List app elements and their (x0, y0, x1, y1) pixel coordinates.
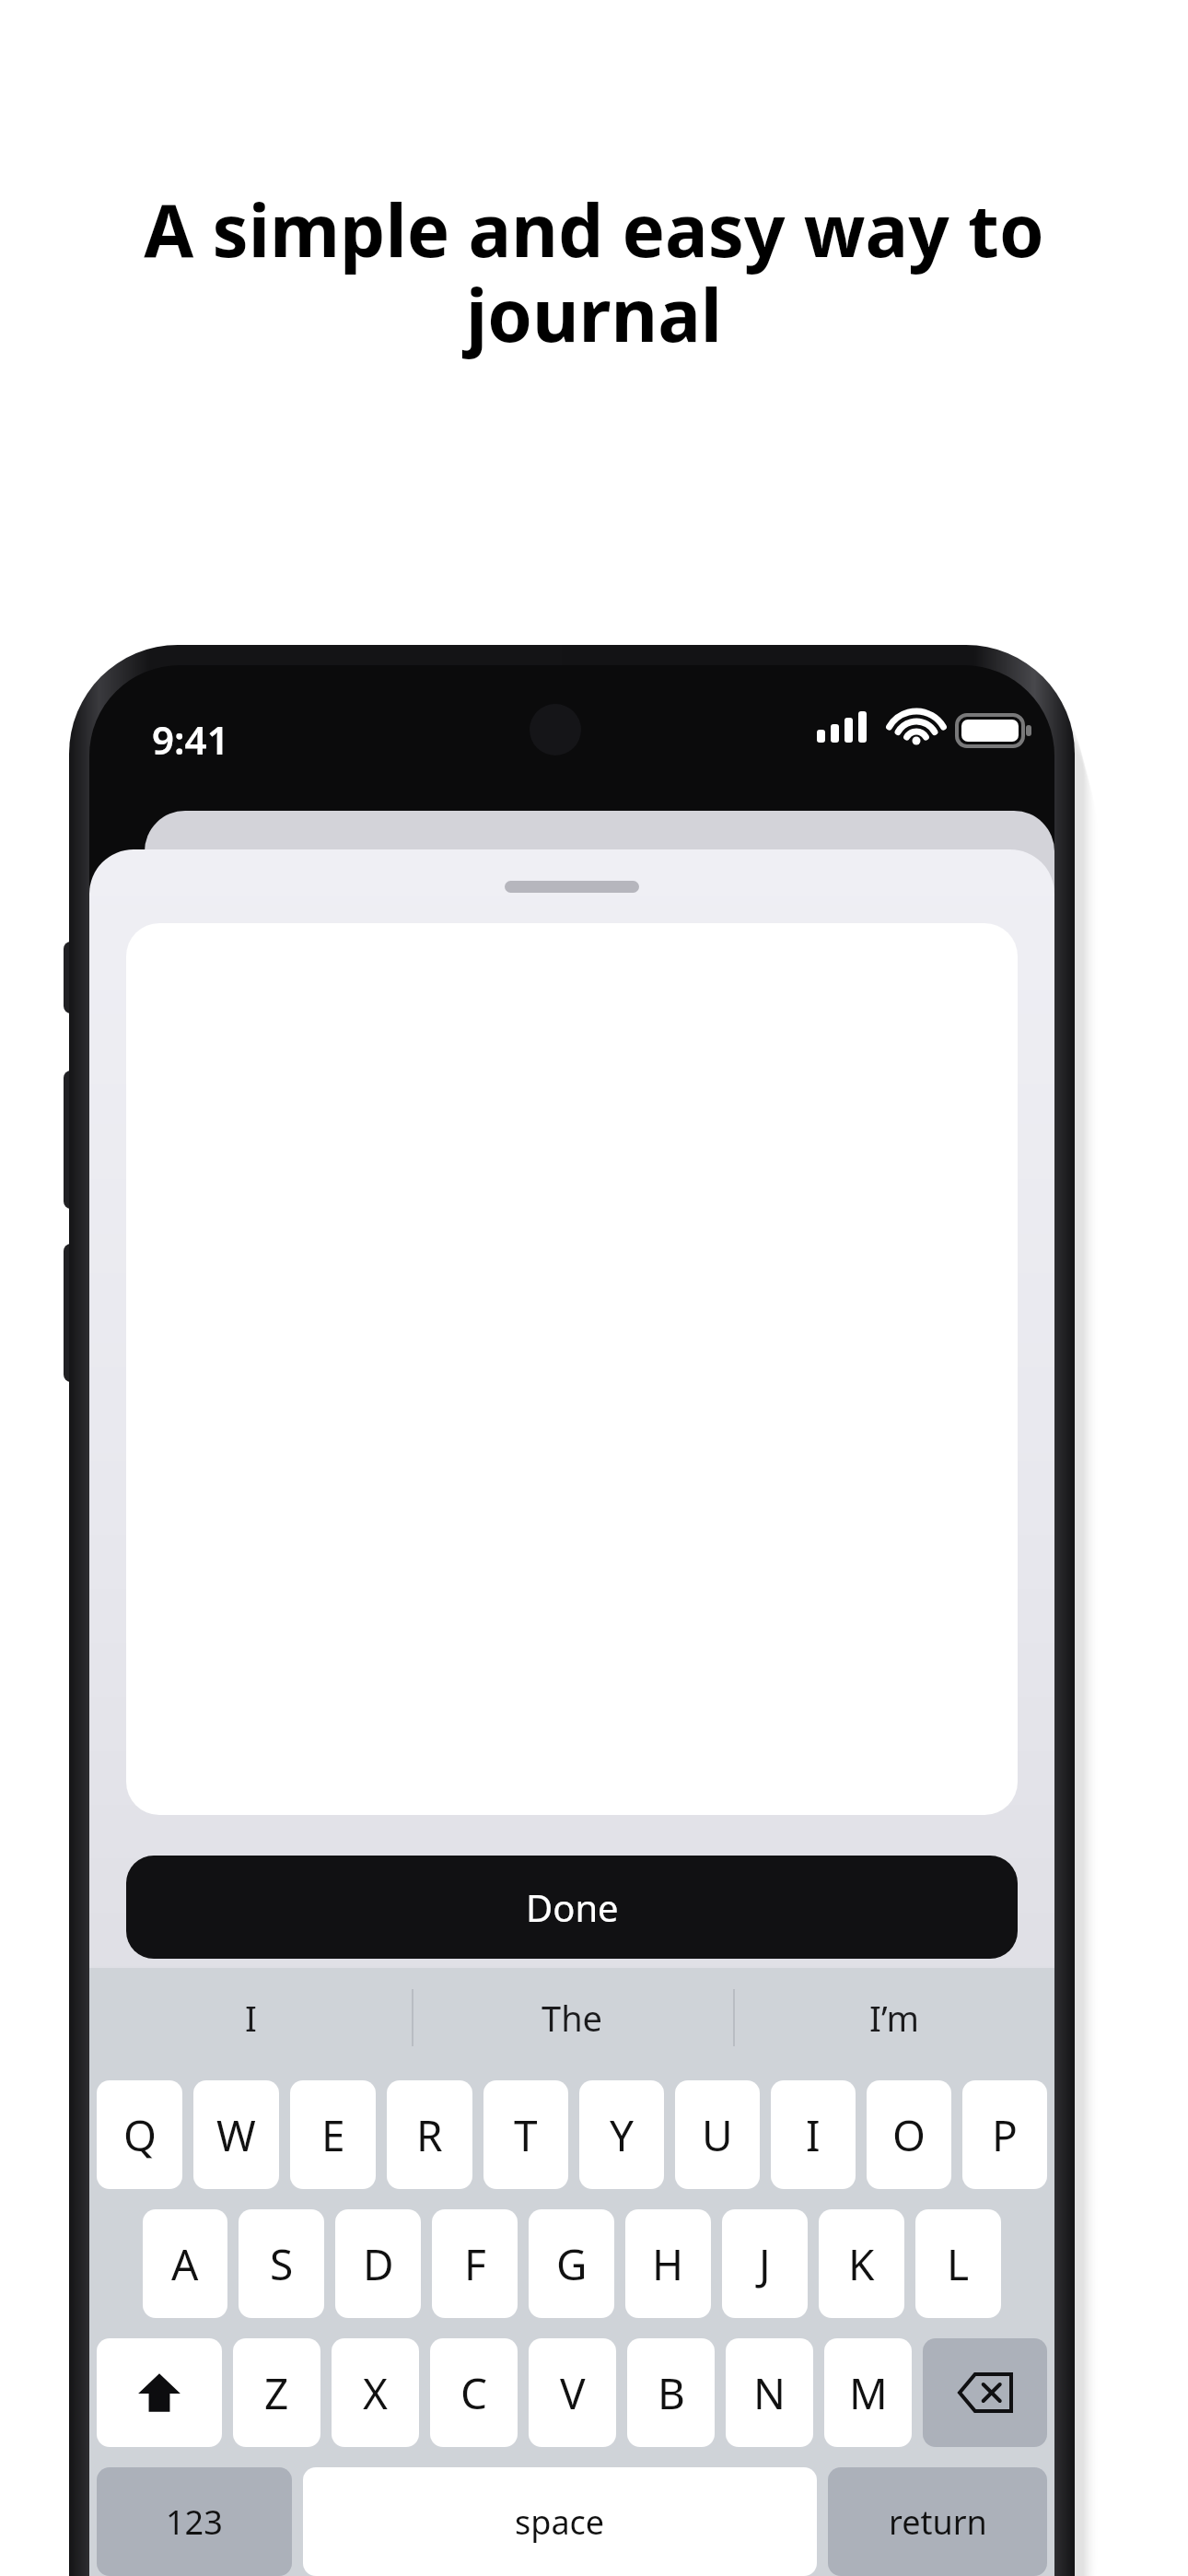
button[interactable]: L (915, 2209, 1001, 2318)
button[interactable]: W (193, 2080, 279, 2189)
staticText: Q (123, 2106, 157, 2164)
button[interactable]: 123 (97, 2467, 292, 2576)
button[interactable]: R (387, 2080, 472, 2189)
button[interactable]: Backspace (923, 2338, 1047, 2447)
staticText: D (363, 2235, 394, 2293)
button[interactable]: T (483, 2080, 568, 2189)
button[interactable]: F (432, 2209, 518, 2318)
staticText: Done (526, 1882, 619, 1932)
staticText: L (947, 2235, 970, 2293)
staticText: T (514, 2106, 538, 2164)
button[interactable]: I (89, 1968, 412, 2067)
button[interactable]: J (722, 2209, 808, 2318)
button[interactable]: I’m (733, 1968, 1054, 2067)
staticText: G (556, 2235, 588, 2293)
button[interactable]: The (412, 1968, 733, 2067)
staticText: F (464, 2235, 486, 2293)
button[interactable]: U (675, 2080, 760, 2189)
staticText: C (460, 2364, 488, 2422)
button[interactable]: G (529, 2209, 614, 2318)
staticText: K (848, 2235, 875, 2293)
staticText: O (892, 2106, 926, 2164)
button[interactable]: D (335, 2209, 421, 2318)
button[interactable]: N (726, 2338, 813, 2447)
button[interactable]: K (819, 2209, 904, 2318)
button[interactable]: S (239, 2209, 324, 2318)
staticText: Z (264, 2364, 289, 2422)
staticText: M (849, 2364, 888, 2422)
button[interactable]: X (332, 2338, 419, 2447)
button[interactable]: M (824, 2338, 912, 2447)
button[interactable]: C (430, 2338, 518, 2447)
button[interactable]: P (962, 2080, 1047, 2189)
staticText: return (889, 2500, 987, 2545)
button[interactable]: return (828, 2467, 1047, 2576)
staticText: space (515, 2500, 605, 2545)
button[interactable]: I (771, 2080, 856, 2189)
staticText: V (560, 2364, 586, 2422)
staticText: I’m (869, 1994, 919, 2042)
staticText: I (806, 2106, 821, 2164)
staticText: S (270, 2235, 294, 2293)
staticText: J (759, 2235, 771, 2293)
staticText: 123 (166, 2500, 223, 2545)
button[interactable]: V (529, 2338, 616, 2447)
staticText: N (753, 2364, 786, 2422)
button[interactable]: space (303, 2467, 817, 2576)
staticText: P (992, 2106, 1018, 2164)
staticText: 9:41 (152, 713, 229, 766)
staticText: The (542, 1994, 603, 2042)
staticText: A simple and easy way to journal (64, 181, 1124, 363)
staticText: R (416, 2106, 443, 2164)
staticText: Y (610, 2106, 635, 2164)
button[interactable]: O (867, 2080, 951, 2189)
button[interactable]: A (143, 2209, 227, 2318)
staticText: X (363, 2364, 388, 2422)
staticText: H (652, 2235, 684, 2293)
button[interactable]: Shift (97, 2338, 222, 2447)
button[interactable]: E (290, 2080, 376, 2189)
button[interactable]: H (625, 2209, 711, 2318)
button[interactable]: B (627, 2338, 715, 2447)
button[interactable]: Done (126, 1856, 1018, 1959)
staticText: W (216, 2106, 256, 2164)
staticText: E (321, 2106, 345, 2164)
button[interactable]: Q (97, 2080, 182, 2189)
button[interactable]: Z (233, 2338, 320, 2447)
button[interactable]: Y (579, 2080, 664, 2189)
staticText: U (702, 2106, 733, 2164)
staticText: I (245, 1994, 257, 2042)
staticText: A (171, 2235, 199, 2293)
staticText: B (658, 2364, 685, 2422)
